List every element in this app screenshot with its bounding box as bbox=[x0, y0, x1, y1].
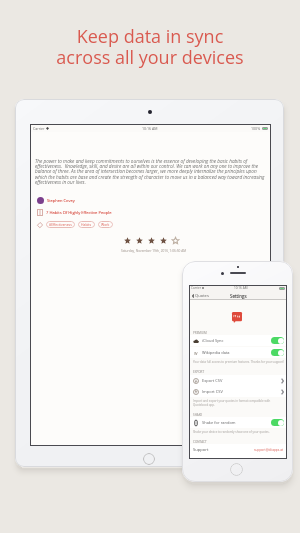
staticText: SHAKE bbox=[193, 413, 203, 417]
staticText: W bbox=[194, 351, 198, 356]
staticText: Carrier bbox=[191, 286, 201, 290]
button[interactable]: Stephen Covey bbox=[37, 197, 75, 204]
button[interactable]: Quotes bbox=[192, 291, 287, 300]
button[interactable]: Shake for random switch bbox=[271, 419, 284, 426]
staticText: 7 Habits Of Highly Effective People bbox=[46, 210, 112, 216]
staticText: support@diiapps.at bbox=[254, 448, 284, 452]
button[interactable]: Shake for random bbox=[189, 417, 287, 428]
staticText: The power to make and keep commitments t… bbox=[35, 158, 248, 164]
staticText: iCloud Sync bbox=[202, 338, 224, 343]
staticText: Stephen Covey bbox=[47, 198, 75, 203]
staticText: PREMIUM bbox=[193, 331, 207, 335]
staticText: EXPORT bbox=[193, 370, 205, 374]
staticText: Carrier bbox=[33, 126, 45, 131]
button[interactable]: Habits bbox=[78, 221, 95, 228]
staticText: 100% bbox=[251, 126, 261, 131]
button[interactable]: W bbox=[189, 347, 287, 358]
staticText: balance of three. As the area of interse… bbox=[35, 168, 257, 174]
staticText: 10:16 AM bbox=[142, 126, 158, 131]
staticText: across all your devices bbox=[0, 45, 300, 70]
staticText: Support bbox=[193, 447, 209, 453]
staticText: Saturday, November 19th, 2016, 1:06:50 A… bbox=[33, 249, 274, 253]
button[interactable]: 7 Habits Of Highly Effective People bbox=[37, 209, 112, 216]
staticText: Import and export your quotes in format … bbox=[193, 399, 284, 407]
staticText: Shake for random bbox=[202, 420, 236, 425]
staticText: Work bbox=[101, 222, 110, 227]
button[interactable]: #Effectiveness bbox=[46, 221, 75, 228]
button[interactable]: Wikipedia data switch bbox=[271, 349, 284, 356]
staticText: effectiveness. Knowledge, skill, and des… bbox=[35, 163, 259, 169]
staticText: Your data full access to premium feature… bbox=[193, 360, 284, 364]
button[interactable]: Work bbox=[98, 221, 113, 228]
staticText: #Effectiveness bbox=[49, 222, 72, 227]
staticText: Shake your device to randomly show one o… bbox=[193, 430, 284, 434]
button[interactable]: Home bbox=[143, 453, 155, 465]
button[interactable]: Home bbox=[230, 463, 243, 476]
button[interactable]: Import CSV bbox=[189, 386, 287, 397]
button[interactable]: iCloud Sync bbox=[189, 335, 287, 346]
button[interactable]: Export CSV bbox=[189, 375, 287, 386]
button[interactable]: Support bbox=[189, 444, 287, 455]
button[interactable]: iCloud Sync switch bbox=[271, 337, 284, 344]
staticText: Settings bbox=[230, 293, 247, 299]
staticText: Import CSV bbox=[202, 389, 223, 394]
staticText: Quotes bbox=[195, 293, 209, 299]
staticText: 10:16 AM bbox=[234, 286, 248, 290]
staticText: CONTACT bbox=[193, 440, 207, 444]
staticText: Export CSV bbox=[202, 378, 223, 383]
staticText: Wikipedia data bbox=[202, 350, 230, 355]
staticText: which the habits are base and create the… bbox=[35, 174, 265, 180]
staticText: effectiveness in our lives. bbox=[35, 179, 86, 185]
staticText: Keep data in sync bbox=[0, 24, 300, 49]
staticText: Habits bbox=[81, 222, 92, 227]
